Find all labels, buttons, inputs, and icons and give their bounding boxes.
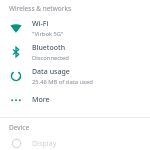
staticText: Wi-Fi (32, 19, 49, 29)
other: Wi-Fi (0, 16, 32, 40)
staticText: More (32, 95, 50, 105)
button[interactable]: Data usage (0, 64, 150, 88)
button[interactable]: Wi-Fi (0, 16, 150, 40)
other: Bluetooth (0, 40, 32, 64)
other: More (0, 88, 32, 112)
staticText: Bluetooth (32, 43, 66, 53)
other: Data usage (0, 64, 32, 88)
staticText: Disconnected (32, 54, 69, 62)
staticText: Data usage (32, 67, 70, 77)
button[interactable]: Display (0, 137, 150, 150)
staticText: Display (32, 139, 57, 149)
staticText: Device (9, 123, 30, 132)
staticText: 25.46 MB of data used (32, 78, 93, 86)
staticText: "Virbok 5G" (32, 30, 64, 38)
button[interactable]: More (0, 88, 150, 112)
button[interactable]: Bluetooth (0, 40, 150, 64)
staticText: Wireless & networks (9, 4, 71, 13)
